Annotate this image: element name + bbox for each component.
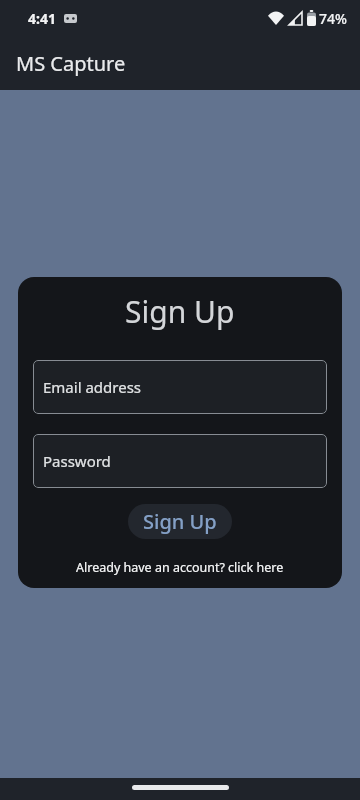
button[interactable]: Password: [33, 434, 327, 488]
staticText: 4:41: [28, 9, 56, 28]
button[interactable]: Sign Up: [128, 504, 232, 539]
button[interactable]: Email address: [33, 360, 327, 414]
button[interactable]: Already have an account? click here: [76, 559, 284, 576]
button[interactable]: [132, 785, 229, 790]
staticText: Sign Up: [125, 291, 235, 332]
staticText: MS Capture: [16, 50, 126, 77]
staticText: 74%: [319, 9, 347, 28]
staticText: Email address: [43, 377, 142, 397]
staticText: Sign Up: [143, 508, 217, 535]
staticText: Password: [43, 451, 111, 471]
